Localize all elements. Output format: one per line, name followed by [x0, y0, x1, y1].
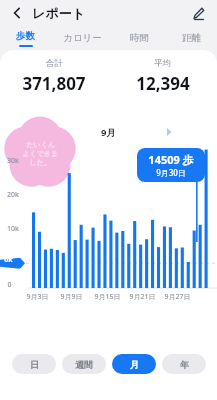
staticText: 14509 歩 — [148, 152, 194, 167]
button[interactable]: 時間 — [113, 26, 165, 50]
staticText: 20k — [7, 190, 19, 200]
staticText: 月 — [130, 359, 139, 370]
button[interactable]: Edit — [187, 2, 209, 24]
button[interactable]: 歩数 — [0, 26, 51, 50]
staticText: 距離 — [182, 32, 201, 44]
staticText: 平均 — [154, 58, 171, 69]
staticText: 時間 — [130, 32, 149, 44]
staticText: 30k — [7, 156, 19, 166]
staticText: 9月15日 — [94, 292, 121, 302]
staticText: 9月 — [101, 126, 116, 139]
button[interactable]: 距離 — [165, 26, 217, 50]
button[interactable]: Next month — [161, 124, 177, 140]
button[interactable]: カロリー — [51, 26, 113, 50]
button[interactable]: 14509 歩 — [137, 148, 205, 182]
staticText: 371,807 — [22, 72, 86, 95]
staticText: 0 — [7, 280, 12, 290]
staticText: 10k — [7, 224, 19, 234]
staticText: 9月30日 — [156, 167, 186, 178]
staticText: 6k — [4, 255, 13, 265]
staticText: 日 — [30, 359, 39, 370]
staticText: よくできま — [22, 149, 58, 158]
button[interactable]: 月 — [112, 354, 156, 374]
button[interactable]: 週間 — [62, 354, 106, 374]
staticText: 9月27日 — [164, 292, 191, 302]
staticText: たいくん — [26, 140, 55, 149]
staticText: した。 — [29, 158, 51, 167]
staticText: 合計 — [46, 58, 63, 69]
button[interactable]: 年 — [162, 354, 206, 374]
button[interactable]: Back — [6, 2, 28, 24]
staticText: 9月9日 — [60, 292, 83, 302]
staticText: 12,394 — [136, 72, 190, 95]
staticText: 歩数 — [16, 30, 35, 42]
staticText: 週間 — [75, 359, 93, 370]
staticText: 年 — [180, 359, 189, 370]
staticText: カロリー — [63, 32, 102, 44]
button[interactable]: 日 — [12, 354, 56, 374]
staticText: 9月21日 — [129, 292, 156, 302]
staticText: レポート — [32, 5, 85, 21]
staticText: 9月3日 — [26, 292, 49, 302]
